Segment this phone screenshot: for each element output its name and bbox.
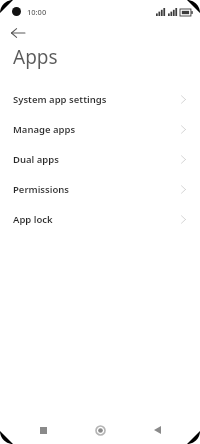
button[interactable]: Permissions — [0, 174, 200, 204]
button[interactable]: Back — [7, 23, 29, 43]
staticText: System app settings — [13, 93, 181, 106]
staticText: Dual apps — [13, 153, 181, 166]
button[interactable]: Manage apps — [0, 114, 200, 144]
staticText: Manage apps — [13, 123, 181, 136]
button[interactable]: System app settings — [0, 84, 200, 114]
staticText: 10:00 — [27, 7, 47, 17]
staticText: App lock — [13, 213, 181, 226]
staticText: Apps — [13, 44, 58, 70]
button[interactable]: App lock — [0, 204, 200, 234]
staticText: Permissions — [13, 183, 181, 196]
button[interactable]: Back — [146, 419, 168, 441]
button[interactable]: Recent apps — [32, 419, 54, 441]
button[interactable]: Home — [89, 419, 111, 441]
button[interactable]: Dual apps — [0, 144, 200, 174]
